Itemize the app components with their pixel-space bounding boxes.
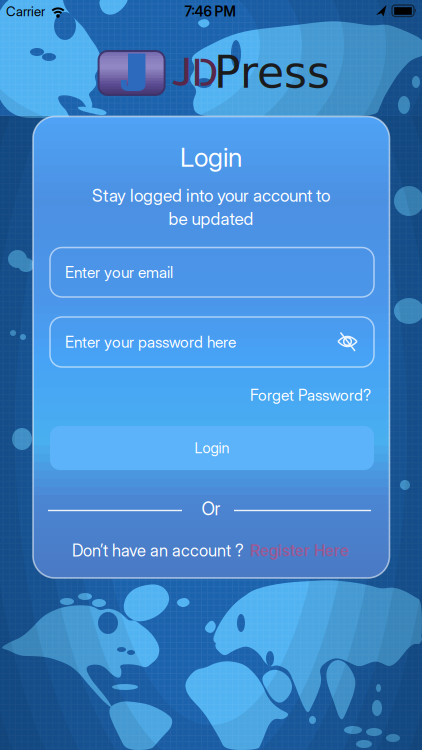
staticText: Enter your password here: [65, 333, 236, 351]
button[interactable]: Register Here: [250, 541, 349, 560]
button[interactable]: Enter your password here: [50, 317, 374, 367]
staticText: Login: [194, 439, 229, 457]
button[interactable]: Login: [50, 426, 374, 470]
staticText: JD: [171, 48, 219, 95]
staticText: Press: [214, 47, 330, 98]
button[interactable]: Forget Password?: [50, 386, 371, 404]
staticText: be updated: [168, 208, 253, 229]
button[interactable]: Show password: [329, 323, 365, 359]
staticText: Login: [180, 141, 242, 173]
staticText: Forget Password?: [250, 386, 371, 404]
staticText: Or: [201, 498, 220, 520]
staticText: Enter your email: [65, 263, 173, 282]
button[interactable]: Enter your email: [50, 247, 374, 297]
staticText: Don’t have an account ?: [72, 540, 244, 561]
staticText: Stay logged into your account to: [92, 185, 330, 206]
staticText: 7:46 PM: [184, 3, 235, 20]
staticText: Carrier: [6, 3, 45, 20]
staticText: Register Here: [250, 541, 349, 560]
